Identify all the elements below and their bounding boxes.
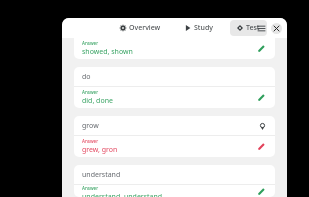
staticText: understand, understand [82,192,163,197]
button[interactable]: Edit answer [256,186,267,197]
button[interactable]: Study [178,20,220,36]
button[interactable]: Overview [113,20,168,36]
staticText: Test [246,23,260,33]
button[interactable]: Answer [74,38,275,59]
staticText: grow [82,121,257,131]
button[interactable]: Test [230,20,267,36]
staticText: Study [194,23,213,33]
button[interactable]: Edit answer [256,141,267,152]
button[interactable]: Edit answer [256,92,267,103]
button[interactable]: Edit answer [256,43,267,54]
button[interactable]: do [74,67,275,108]
staticText: grew, gron [82,145,118,155]
staticText: Answer [82,185,99,191]
button[interactable]: grow [74,116,275,157]
staticText: do [82,72,267,82]
staticText: Answer [82,89,99,95]
button[interactable]: Menu [255,22,268,35]
staticText: Answer [82,40,99,46]
button[interactable]: Pin term [257,121,267,131]
staticText: did, done [82,96,113,106]
staticText: showed, shown [82,47,133,57]
staticText: Answer [82,138,99,144]
button[interactable]: Close [271,23,282,34]
button[interactable]: understand [74,165,275,197]
staticText: Overview [129,23,161,33]
staticText: understand [82,170,267,180]
